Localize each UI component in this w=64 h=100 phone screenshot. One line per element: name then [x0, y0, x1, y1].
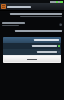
button[interactable]: App icon [1, 4, 6, 9]
button[interactable]: Options [59, 23, 62, 26]
button[interactable] [3, 49, 61, 55]
button[interactable] [3, 43, 61, 49]
button[interactable] [4, 56, 60, 62]
